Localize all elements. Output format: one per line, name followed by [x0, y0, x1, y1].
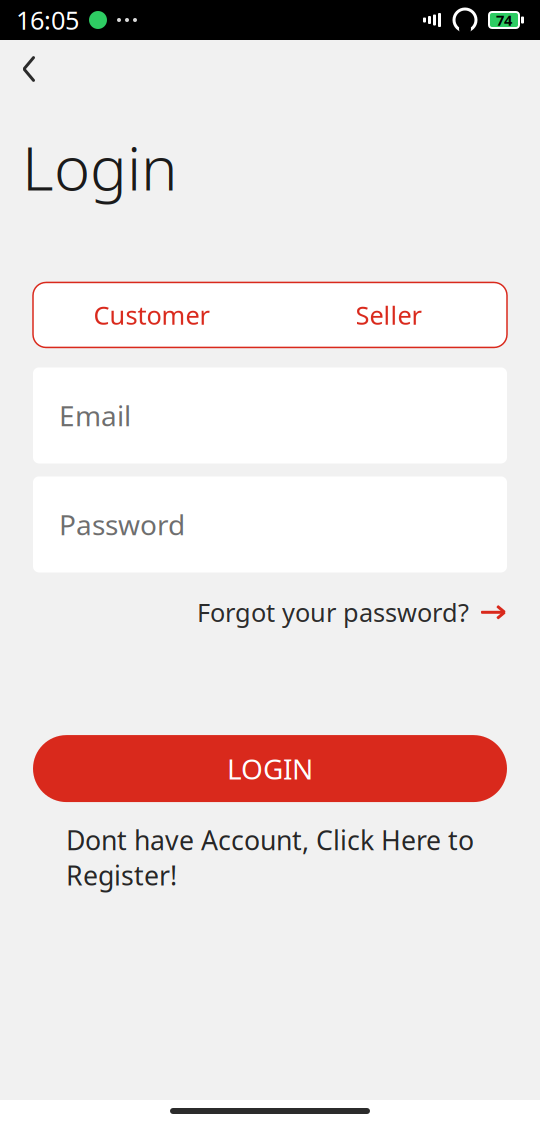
staticText: LOGIN: [227, 750, 313, 787]
button[interactable]: Dont have Account, Click Here to Registe…: [56, 816, 484, 899]
staticText: Login: [22, 126, 178, 207]
button[interactable]: Forgot your password?: [197, 589, 507, 635]
staticText: Seller: [355, 298, 421, 332]
button[interactable]: Back: [0, 40, 58, 98]
staticText: Forgot your password?: [197, 595, 469, 629]
staticText: Password: [59, 506, 185, 543]
staticText: 16:05: [16, 3, 79, 37]
staticText: Email: [59, 397, 131, 434]
button[interactable]: Customer: [33, 282, 270, 347]
button[interactable]: LOGIN: [33, 735, 507, 802]
staticText: 74: [496, 10, 512, 30]
button[interactable]: Seller: [270, 282, 507, 347]
staticText: Dont have Account, Click Here to Registe…: [66, 822, 474, 893]
staticText: Customer: [93, 298, 209, 332]
